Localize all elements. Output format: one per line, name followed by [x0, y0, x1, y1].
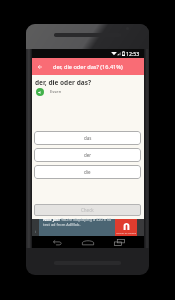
staticText: die: [84, 169, 91, 175]
button[interactable]: das: [34, 131, 141, 145]
staticText: der: [84, 152, 92, 158]
staticText: AdMob by Google: [116, 231, 137, 234]
button[interactable]: i: [32, 219, 137, 236]
staticText: der, die oder das?: [35, 78, 92, 87]
button[interactable]: der: [34, 148, 141, 162]
other: Play audio: [36, 88, 44, 96]
staticText: Check: [81, 207, 94, 213]
staticText: das: [84, 135, 92, 141]
staticText: test ad from AdMob.: [43, 222, 81, 227]
button[interactable]: Check: [34, 204, 141, 216]
button[interactable]: Recents: [111, 236, 127, 248]
staticText: You're displaying a 320 x 50: [60, 217, 112, 222]
button[interactable]: Home: [80, 236, 96, 248]
button[interactable]: Back: [50, 236, 64, 248]
button[interactable]: die: [34, 165, 141, 179]
staticText: Nice job!: [43, 217, 60, 222]
button[interactable]: Play audio: [36, 88, 62, 96]
staticText: Essen: [50, 89, 62, 95]
staticText: 12:53: [126, 50, 140, 57]
button[interactable]: Back: [32, 58, 48, 75]
staticText: der, die oder das? (16.41%): [53, 63, 123, 71]
staticText: i: [35, 229, 36, 234]
